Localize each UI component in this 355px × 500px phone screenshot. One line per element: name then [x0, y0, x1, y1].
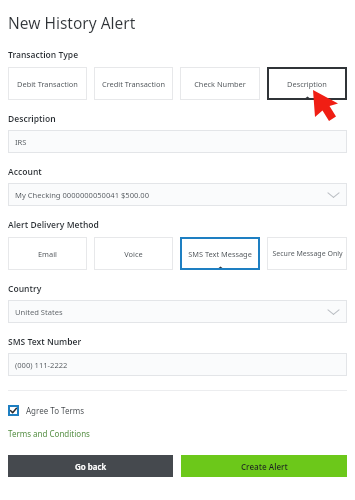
staticText: Description: [287, 79, 327, 89]
button[interactable]: Email: [8, 237, 87, 270]
other: Pointer: [0, 0, 355, 500]
button[interactable]: Agree To Terms: [8, 405, 85, 416]
staticText: SMS Text Message: [188, 249, 252, 259]
staticText: United States: [15, 307, 63, 317]
button[interactable]: My Checking 0000000050041 $500.00: [8, 183, 347, 206]
staticText: Voice: [124, 249, 143, 259]
staticText: Credit Transaction: [102, 79, 165, 89]
button[interactable]: Debit Transaction: [8, 67, 87, 100]
staticText: Alert Delivery Method: [8, 219, 99, 231]
staticText: Terms and Conditions: [8, 428, 90, 439]
staticText: New History Alert: [8, 12, 136, 33]
button[interactable]: Secure Message Only: [267, 237, 347, 270]
staticText: Go back: [75, 461, 107, 472]
button[interactable]: Go back: [8, 455, 173, 477]
staticText: My Checking 0000000050041 $500.00: [15, 190, 150, 200]
button[interactable]: Create Alert: [181, 455, 347, 477]
staticText: SMS Text Number: [8, 336, 82, 348]
staticText: Agree To Terms: [26, 405, 85, 416]
staticText: Country: [8, 283, 42, 295]
staticText: Account: [8, 166, 42, 178]
button[interactable]: (000) 111-2222: [8, 353, 347, 376]
staticText: Description: [8, 113, 56, 125]
staticText: Email: [38, 249, 57, 259]
button[interactable]: Description: [267, 67, 347, 100]
staticText: (000) 111-2222: [15, 360, 68, 370]
button[interactable]: Credit Transaction: [94, 67, 173, 100]
staticText: IRS: [15, 137, 27, 147]
staticText: Transaction Type: [8, 49, 79, 61]
button[interactable]: IRS: [8, 130, 347, 153]
button[interactable]: Terms and Conditions: [8, 428, 90, 439]
staticText: Create Alert: [241, 461, 288, 472]
staticText: Secure Message Only: [272, 249, 343, 259]
staticText: Check Number: [194, 79, 246, 89]
button[interactable]: SMS Text Message: [180, 237, 260, 270]
staticText: Debit Transaction: [17, 79, 78, 89]
button[interactable]: Voice: [94, 237, 173, 270]
button[interactable]: United States: [8, 300, 347, 323]
button[interactable]: Check Number: [180, 67, 260, 100]
